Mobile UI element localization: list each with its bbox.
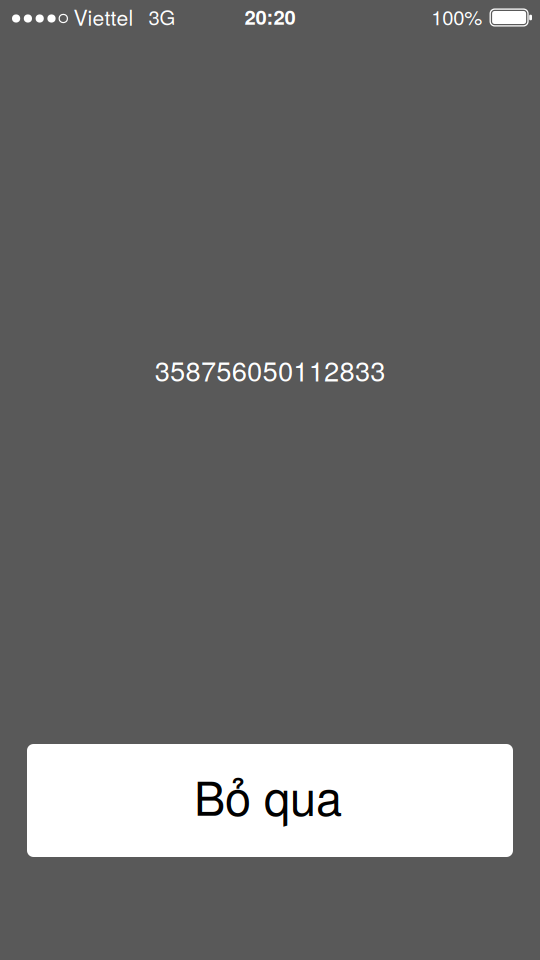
- button[interactable]: Bỏ qua: [27, 744, 513, 857]
- staticText: 100%: [431, 2, 482, 31]
- staticText: 3G: [148, 2, 175, 31]
- staticText: 358756050112833: [155, 350, 385, 389]
- staticText: Viettel: [73, 1, 133, 32]
- staticText: 20:20: [244, 2, 295, 31]
- staticText: Bỏ qua: [194, 762, 342, 829]
